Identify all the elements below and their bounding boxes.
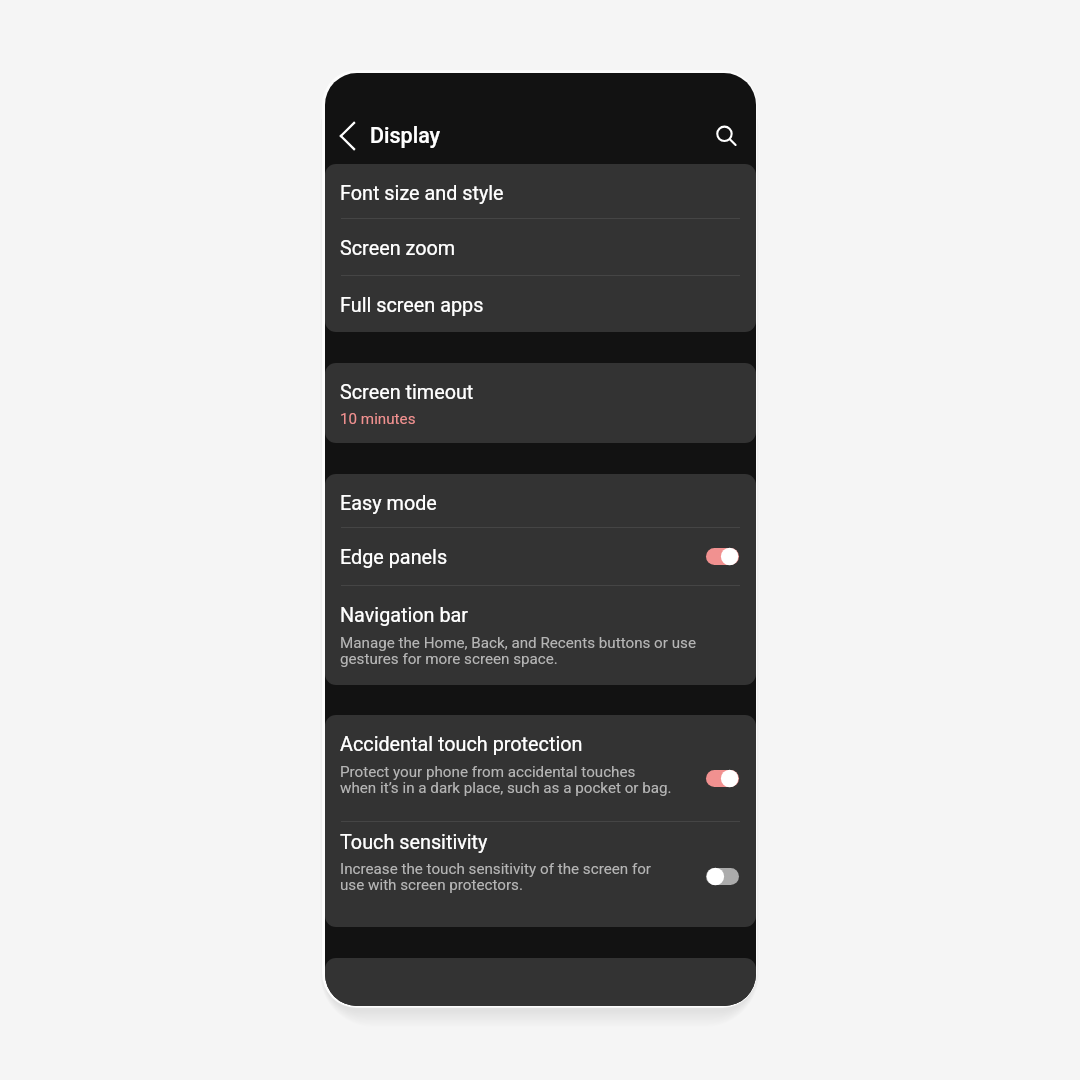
staticText: Easy mode bbox=[340, 492, 437, 515]
staticText: Screen zoom bbox=[340, 237, 456, 260]
button[interactable]: Edge panels bbox=[325, 528, 756, 585]
button[interactable]: Accidental touch protection bbox=[706, 769, 739, 788]
button[interactable]: Back bbox=[330, 119, 364, 153]
button[interactable] bbox=[325, 958, 756, 1006]
button[interactable]: Font size and style bbox=[325, 164, 756, 218]
button[interactable]: Touch sensitivity bbox=[706, 867, 739, 886]
button[interactable]: Screen timeout bbox=[325, 363, 756, 443]
staticText: Font size and style bbox=[340, 182, 504, 205]
button[interactable]: Easy mode bbox=[325, 474, 756, 527]
button[interactable]: Full screen apps bbox=[325, 276, 756, 332]
staticText: Accidental touch protection bbox=[340, 733, 583, 756]
button[interactable]: Search bbox=[709, 119, 743, 153]
staticText: Increase the touch sensitivity of the sc… bbox=[340, 861, 651, 893]
staticText: Full screen apps bbox=[340, 294, 484, 317]
staticText: Protect your phone from accidental touch… bbox=[340, 764, 672, 796]
button[interactable]: Accidental touch protection bbox=[325, 715, 756, 821]
button[interactable]: Navigation bar bbox=[325, 586, 756, 685]
staticText: Screen timeout bbox=[340, 381, 474, 404]
staticText: 10 minutes bbox=[340, 411, 416, 427]
staticText: Navigation bar bbox=[340, 604, 469, 627]
staticText: Edge panels bbox=[340, 546, 448, 569]
staticText: Display bbox=[370, 123, 441, 148]
staticText: Touch sensitivity bbox=[340, 831, 488, 854]
button[interactable]: Touch sensitivity bbox=[325, 822, 756, 927]
staticText: Manage the Home, Back, and Recents butto… bbox=[340, 635, 696, 667]
button[interactable]: Edge panels bbox=[706, 547, 739, 566]
button[interactable]: Screen zoom bbox=[325, 219, 756, 275]
